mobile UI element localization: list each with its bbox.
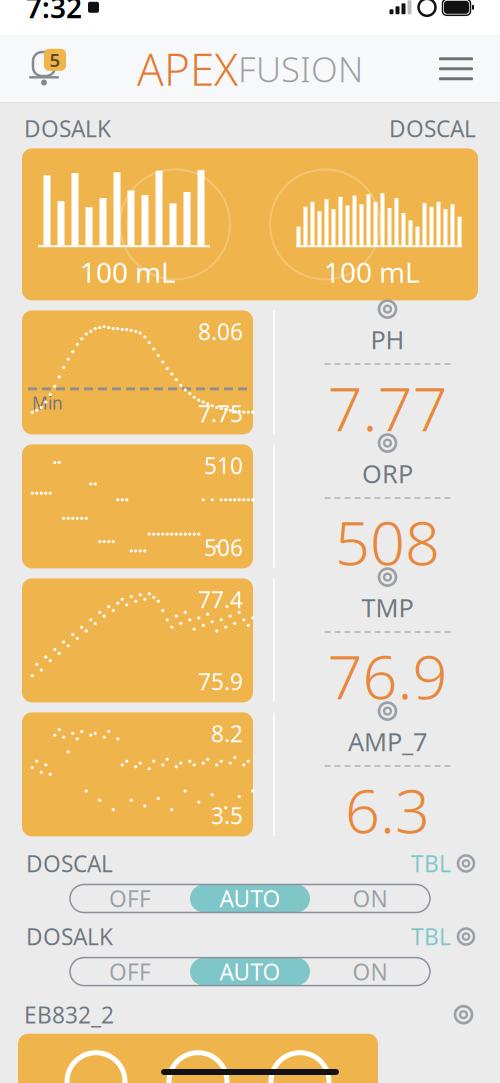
- staticText: AUTO: [219, 957, 280, 987]
- staticText: 7:32: [26, 0, 82, 26]
- staticText: 506: [204, 532, 243, 562]
- staticText: 3.5: [211, 800, 243, 830]
- staticText: PH: [370, 323, 404, 356]
- button[interactable]: AUTO: [190, 884, 310, 912]
- staticText: 7.77: [327, 367, 447, 448]
- button[interactable]: OFF: [70, 958, 190, 986]
- button[interactable]: ON: [310, 884, 430, 912]
- staticText: 6.3: [345, 769, 430, 850]
- button[interactable]: PH settings: [375, 297, 400, 322]
- staticText: 100 mL: [80, 253, 176, 290]
- staticText: TBL: [411, 921, 451, 952]
- staticText: 76.9: [327, 635, 447, 716]
- staticText: 100 mL: [324, 253, 420, 290]
- staticText: 510: [204, 450, 243, 480]
- staticText: FUSION: [238, 46, 363, 92]
- staticText: Min: [32, 391, 63, 414]
- staticText: 508: [335, 501, 440, 582]
- button[interactable]: DOSCAL table settings: [411, 848, 474, 878]
- button[interactable]: ORP settings: [375, 431, 400, 456]
- staticText: DOSALK: [24, 113, 111, 143]
- staticText: DOSCAL: [389, 113, 476, 143]
- staticText: OFF: [109, 957, 151, 987]
- button[interactable]: Notifications, 5 unread: [18, 47, 70, 91]
- staticText: DOSALK: [26, 921, 113, 952]
- staticText: TBL: [411, 848, 451, 878]
- staticText: 7.75: [198, 398, 243, 428]
- staticText: APEX: [137, 40, 238, 98]
- button[interactable]: TMP settings: [375, 565, 400, 590]
- staticText: ORP: [362, 457, 413, 490]
- button[interactable]: AUTO: [190, 958, 310, 986]
- staticText: 5: [49, 47, 60, 72]
- staticText: DOSCAL: [26, 848, 113, 878]
- staticText: 77.4: [198, 584, 243, 614]
- button[interactable]: OFF: [70, 884, 190, 912]
- staticText: 8.2: [211, 718, 243, 748]
- button[interactable]: Menu: [430, 47, 482, 91]
- button[interactable]: AMP_7 settings: [375, 699, 400, 724]
- staticText: 75.9: [198, 666, 243, 696]
- staticText: 8.06: [198, 316, 243, 346]
- staticText: AMP_7: [348, 725, 427, 758]
- button[interactable]: DOSALK table settings: [411, 921, 474, 952]
- staticText: ON: [352, 957, 387, 987]
- button[interactable]: ON: [310, 958, 430, 986]
- staticText: OFF: [109, 883, 151, 913]
- staticText: EB832_2: [24, 1000, 114, 1030]
- button[interactable]: EB832_2 settings: [451, 1002, 476, 1027]
- staticText: TMP: [361, 591, 413, 624]
- staticText: ON: [352, 883, 387, 913]
- staticText: AUTO: [219, 883, 280, 913]
